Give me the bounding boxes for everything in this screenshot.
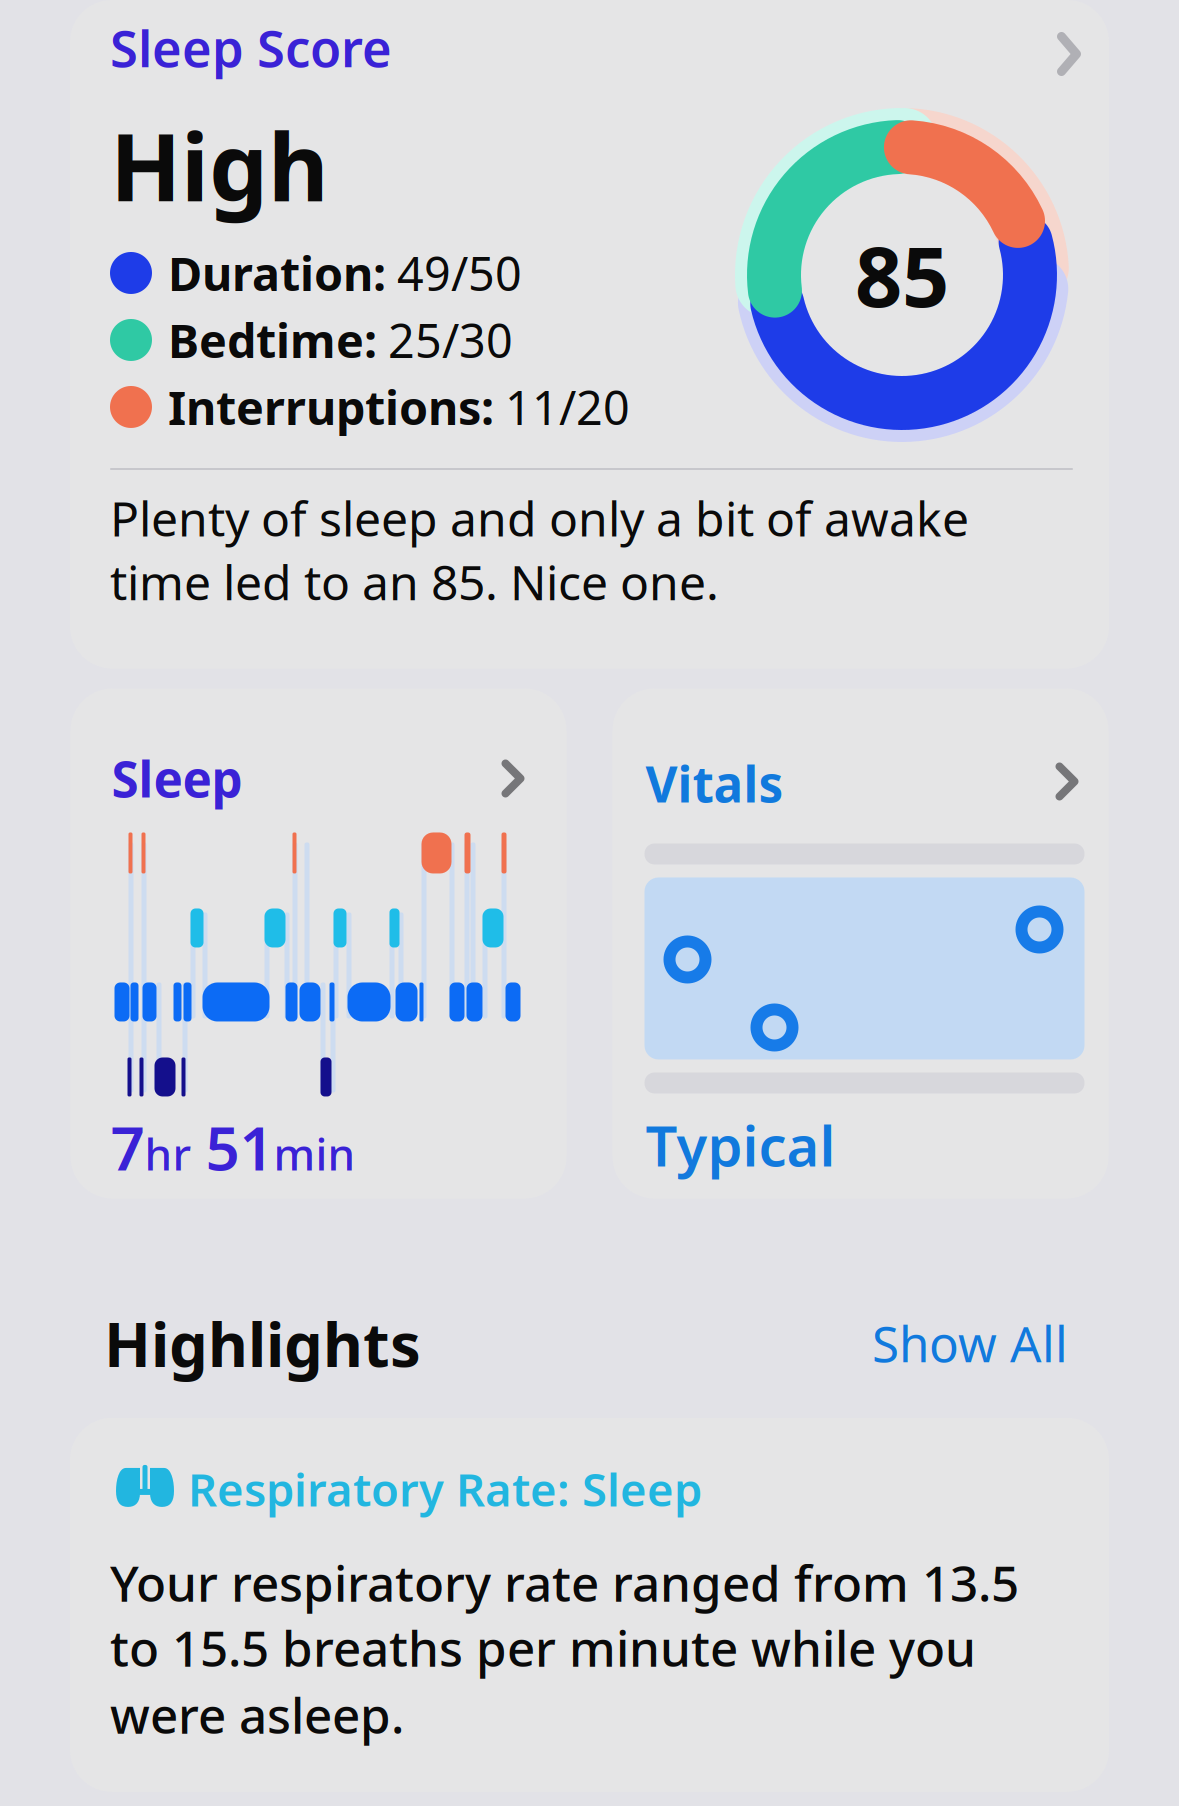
staticText: 49/50 [397, 242, 522, 304]
staticText: 25/30 [388, 309, 513, 371]
button[interactable]: Vitals [612, 688, 1108, 1198]
staticText: 7 [110, 1107, 144, 1187]
staticText: hr [144, 1124, 191, 1183]
staticText: min [273, 1124, 355, 1183]
button[interactable]: Sleep [70, 688, 566, 1198]
staticText: 11/20 [505, 376, 630, 438]
staticText: Interruptions: [168, 376, 494, 438]
button[interactable]: Show All [872, 1310, 1068, 1376]
staticText: Plenty of sleep and only a bit of awake [110, 486, 969, 550]
staticText: Sleep [111, 745, 242, 811]
staticText: 51 [205, 1107, 273, 1187]
staticText: High [110, 103, 329, 227]
staticText: Your respiratory rate ranged from 13.5 [110, 1550, 1019, 1615]
staticText: time led to an 85. Nice one. [110, 550, 719, 613]
staticText: Show All [872, 1310, 1068, 1376]
staticText: were asleep. [110, 1682, 404, 1747]
staticText: Duration: [168, 242, 386, 304]
staticText: 85 [855, 220, 949, 330]
staticText: Typical [645, 1107, 835, 1182]
staticText: Bedtime: [168, 309, 377, 371]
staticText: Vitals [645, 750, 783, 816]
staticText: to 15.5 breaths per minute while you [110, 1615, 976, 1680]
staticText: Highlights [104, 1302, 421, 1384]
button[interactable]: Sleep Score [0, 0, 1179, 668]
staticText: Sleep Score [110, 14, 392, 81]
staticText: Respiratory Rate: Sleep [188, 1459, 702, 1519]
